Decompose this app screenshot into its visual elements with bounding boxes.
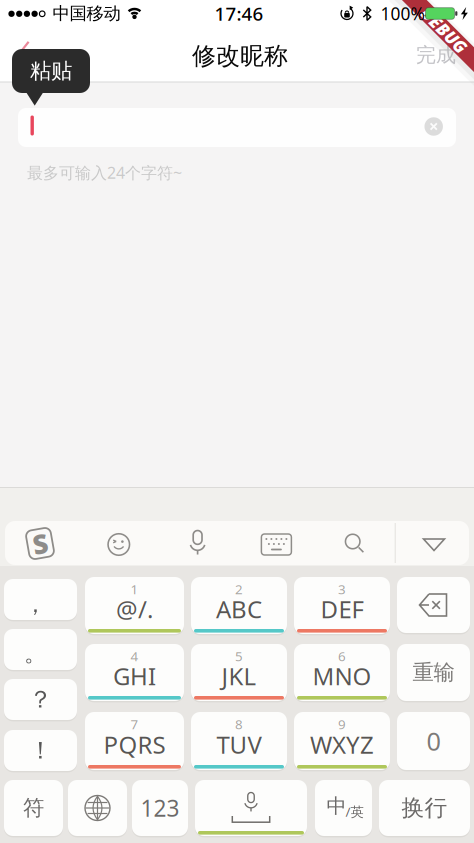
button[interactable]: 5 JKL bbox=[191, 644, 287, 701]
button[interactable]: 0 bbox=[397, 712, 470, 770]
staticText: 17:46 bbox=[214, 1, 263, 26]
staticText: DEF bbox=[320, 593, 363, 625]
staticText: 8 bbox=[235, 715, 243, 733]
staticText: ABC bbox=[216, 593, 262, 625]
button[interactable]: 数字键盘 bbox=[132, 780, 188, 836]
button[interactable]: 完成 bbox=[406, 35, 466, 75]
button[interactable]: 7 PQRS bbox=[85, 712, 184, 770]
button[interactable]: 1 bbox=[85, 577, 184, 634]
staticText: 5 bbox=[235, 647, 243, 665]
staticText: ？ bbox=[28, 685, 52, 714]
staticText: 。 bbox=[24, 640, 47, 667]
button[interactable]: 问号 bbox=[4, 679, 77, 720]
button[interactable]: 清除文本 bbox=[424, 117, 443, 136]
staticText: MNO bbox=[312, 660, 371, 692]
staticText: /英 bbox=[345, 803, 363, 820]
button[interactable]: 删除 bbox=[397, 577, 470, 633]
button[interactable]: 中英切换 bbox=[315, 780, 372, 836]
staticText: 1 bbox=[130, 580, 138, 598]
button[interactable]: 收起键盘 bbox=[422, 538, 445, 552]
staticText: 3 bbox=[338, 580, 346, 598]
staticText: 100% bbox=[380, 2, 424, 25]
staticText: GHI bbox=[113, 660, 156, 692]
staticText: WXYZ bbox=[310, 729, 374, 760]
staticText: S bbox=[32, 526, 47, 561]
staticText: DEBUG bbox=[416, 18, 473, 41]
staticText: 符 bbox=[23, 795, 44, 821]
button[interactable]: 空格 bbox=[195, 780, 307, 836]
staticText: PQRS bbox=[103, 729, 165, 760]
staticText: 2 bbox=[235, 580, 243, 598]
staticText: JKL bbox=[221, 660, 256, 692]
button[interactable]: 6 MNO bbox=[294, 644, 390, 701]
staticText: 6 bbox=[338, 647, 346, 665]
staticText: TUV bbox=[216, 729, 261, 760]
staticText: 9 bbox=[338, 715, 346, 733]
staticText: 换行 bbox=[401, 794, 447, 822]
button[interactable]: 切换输入法 bbox=[68, 780, 127, 836]
button[interactable]: 3 DEF bbox=[294, 577, 390, 634]
button[interactable]: 逗号 bbox=[4, 579, 77, 620]
staticText: @/. bbox=[116, 593, 153, 625]
button[interactable]: 9 WXYZ bbox=[294, 712, 390, 770]
button[interactable]: 重输 bbox=[397, 644, 470, 701]
button[interactable]: 句号 bbox=[4, 629, 77, 670]
staticText: 0 bbox=[426, 724, 440, 758]
staticText: 重输 bbox=[412, 659, 454, 686]
staticText: 4 bbox=[130, 647, 138, 665]
button[interactable]: 2 ABC bbox=[191, 577, 287, 634]
button[interactable]: 搜狗输入法 bbox=[23, 526, 57, 560]
button[interactable]: 粘贴 bbox=[12, 49, 90, 93]
staticText: ， bbox=[24, 591, 47, 618]
button[interactable]: 叹号 bbox=[4, 730, 77, 771]
button[interactable]: 换行 bbox=[379, 780, 470, 836]
button[interactable]: 语音输入 bbox=[184, 529, 212, 557]
staticText: 粘贴 bbox=[30, 58, 72, 84]
button[interactable]: 8 TUV bbox=[191, 712, 287, 770]
staticText: 最多可输入24个字符~ bbox=[27, 162, 182, 183]
button[interactable]: 符号 bbox=[4, 780, 63, 836]
staticText: 中国移动 bbox=[52, 3, 120, 24]
button[interactable]: 4 GHI bbox=[85, 644, 184, 701]
staticText: 中 bbox=[326, 794, 346, 818]
staticText: 7 bbox=[130, 715, 138, 733]
button[interactable]: 键盘 bbox=[260, 532, 292, 556]
button[interactable]: 表情 bbox=[107, 532, 131, 556]
staticText: 完成 bbox=[416, 43, 456, 67]
staticText: 修改昵称 bbox=[192, 41, 288, 71]
staticText: 123 bbox=[140, 793, 179, 823]
button[interactable]: 搜索 bbox=[344, 533, 366, 555]
staticText: ！ bbox=[28, 736, 52, 765]
